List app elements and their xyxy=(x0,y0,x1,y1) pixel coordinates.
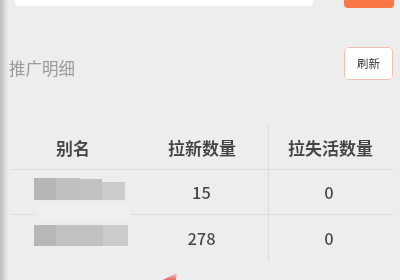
button[interactable]: Row 1 detail xyxy=(10,170,393,214)
button[interactable]: 刷新 xyxy=(344,47,393,80)
staticText: 0 xyxy=(324,226,334,250)
staticText: 278 xyxy=(187,226,216,250)
staticText: 拉新数量 xyxy=(168,135,236,159)
staticText: 0 xyxy=(324,180,334,204)
button[interactable]: Search xyxy=(344,0,394,8)
staticText: 别名 xyxy=(56,135,90,159)
button[interactable]: Row 2 detail xyxy=(10,215,393,259)
staticText: 15 xyxy=(192,180,211,204)
staticText: 刷新 xyxy=(357,55,380,72)
staticText: 推广明细 xyxy=(9,56,75,80)
staticText: 拉失活数量 xyxy=(288,135,373,159)
